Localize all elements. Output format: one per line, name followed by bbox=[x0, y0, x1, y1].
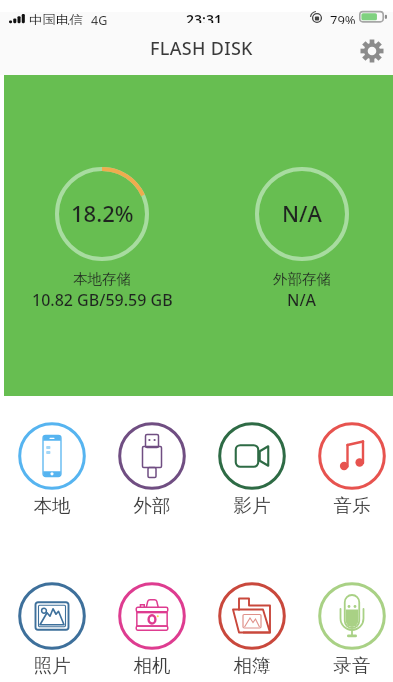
staticText: 18.2% bbox=[71, 198, 134, 228]
button[interactable]: 相机 bbox=[104, 576, 200, 674]
button[interactable]: 录音 bbox=[304, 576, 393, 674]
staticText: 相机 bbox=[104, 654, 200, 677]
staticText: 录音 bbox=[304, 654, 393, 677]
staticText: N/A bbox=[282, 198, 322, 228]
staticText: 10.82 GB/59.59 GB bbox=[32, 289, 173, 311]
staticText: 本地 bbox=[4, 494, 100, 517]
button[interactable]: 音乐 bbox=[304, 416, 393, 514]
staticText: 中国电信 bbox=[29, 12, 83, 25]
button[interactable]: 照片 bbox=[4, 576, 100, 674]
staticText: 音乐 bbox=[304, 494, 393, 517]
staticText: FLASH DISK bbox=[150, 36, 253, 61]
staticText: 4G bbox=[91, 12, 108, 25]
button[interactable]: 本地 bbox=[4, 416, 100, 514]
button[interactable]: 相簿 bbox=[204, 576, 300, 674]
staticText: 照片 bbox=[4, 654, 100, 677]
staticText: N/A bbox=[287, 289, 317, 311]
staticText: 相簿 bbox=[204, 654, 300, 677]
staticText: 影片 bbox=[204, 494, 300, 517]
button[interactable]: 外部 bbox=[104, 416, 200, 514]
staticText: 79% bbox=[330, 11, 356, 24]
staticText: 外部 bbox=[104, 494, 200, 517]
button[interactable]: 影片 bbox=[204, 416, 300, 514]
staticText: 23:31 bbox=[186, 10, 222, 23]
button[interactable]: Settings bbox=[352, 31, 392, 71]
staticText: 外部存储 bbox=[273, 270, 331, 288]
staticText: 本地存储 bbox=[73, 270, 131, 288]
